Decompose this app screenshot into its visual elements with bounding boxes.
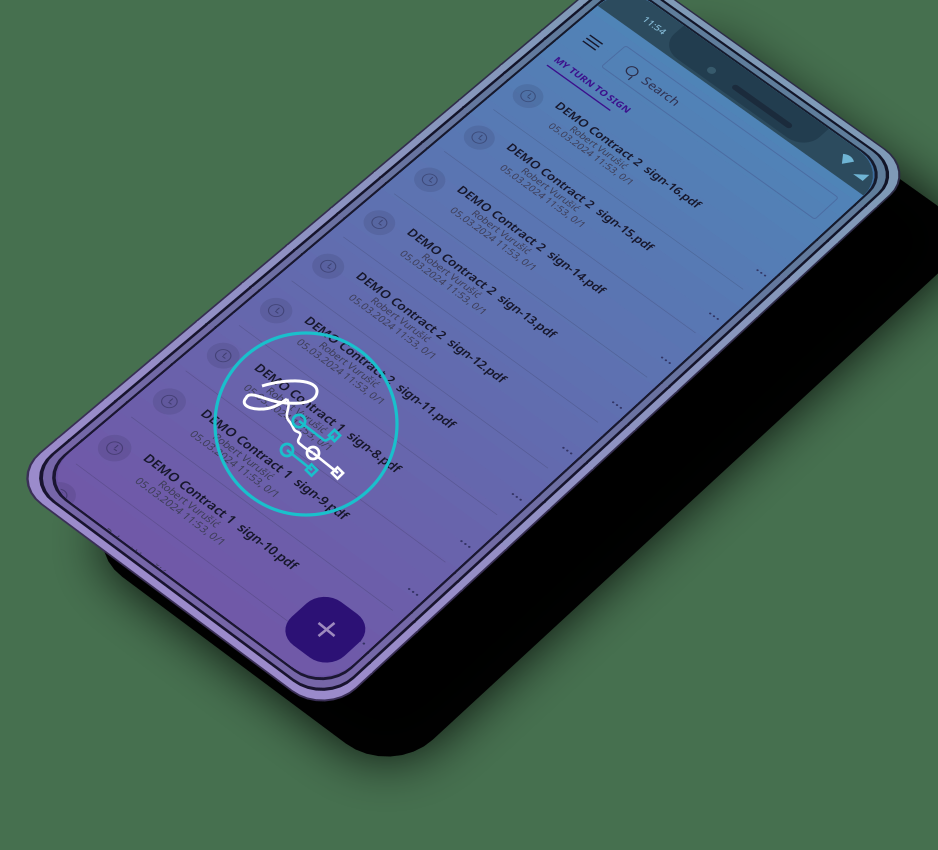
staticText: Robert Vurušić — [510, 181, 591, 197]
staticText: 05.03.2024 11:53, 0/1 — [531, 146, 651, 162]
staticText: 05.03.2024 11:53, 0/1 — [229, 409, 349, 425]
staticText: DEMO Contract 2 sign-14.pdf — [428, 230, 635, 249]
staticText: Search — [636, 80, 687, 102]
button[interactable]: More options — [0, 0, 938, 850]
button[interactable]: More options — [0, 0, 938, 850]
staticText: MY TURN TO SIGN — [538, 77, 647, 93]
button[interactable]: More options — [0, 0, 938, 850]
staticText: DEMO Contract 1 sign-9.pdf — [175, 454, 374, 474]
staticText: 05.03.2024 11:53, 0/1 — [65, 551, 185, 567]
staticText: DEMO Contract 1 sign-10.pdf — [117, 502, 324, 521]
staticText: Robert Vurušić — [411, 267, 492, 283]
button[interactable]: More options — [0, 0, 938, 850]
staticText: Robert Vurušić — [461, 224, 542, 240]
button[interactable]: More options — [0, 0, 938, 850]
staticText: 05.03.2024 11:53, 0/1 — [175, 456, 295, 472]
staticText: Robert Vurušić — [257, 402, 338, 418]
button[interactable]: Close — [0, 0, 938, 850]
button[interactable]: More options — [0, 0, 938, 850]
staticText: 05.03.2024 11:53, 0/1 — [281, 364, 401, 380]
staticText: DEMO Contract 2 sign-16.pdf — [525, 145, 732, 164]
staticText: DEMO Contract 2 sign-15.pdf — [477, 187, 684, 206]
staticText: DEMO Contract 2 sign-13.pdf — [378, 273, 585, 293]
staticText: 11:54 — [639, 17, 670, 33]
button[interactable]: More options — [0, 0, 938, 850]
staticText: Robert Vurušić — [361, 312, 442, 327]
staticText: 05.03.2024 11:53, 0/1 — [121, 503, 241, 519]
staticText: 05.03.2024 11:53, 0/1 — [434, 231, 554, 247]
staticText: DEMO Contract 2 sign-11.pdf — [277, 362, 484, 382]
button[interactable]: More options — [0, 0, 938, 850]
staticText: Robert Vurušić — [149, 496, 230, 512]
staticText: Robert Vurušić — [309, 356, 390, 372]
button[interactable]: MY TURN TO SIGN — [0, 0, 938, 850]
staticText: Robert Vurušić — [559, 139, 640, 155]
staticText: Robert Vurušić — [203, 448, 284, 464]
staticText: 05.03.2024 11:53, 0/1 — [483, 188, 603, 204]
staticText: 05.03.2024 11:53, 0/1 — [333, 319, 453, 335]
staticText: DEMO Contract 1 sign-8.pdf — [228, 408, 427, 427]
button[interactable]: More options — [0, 0, 938, 850]
staticText: DEMO Contract 2 sign-12.pdf — [328, 317, 535, 337]
button[interactable]: Menu — [0, 0, 938, 850]
button[interactable]: Search — [0, 0, 938, 850]
button[interactable]: More options — [0, 0, 938, 850]
staticText: Robert Vurušić — [94, 544, 175, 560]
staticText: 05.03.2024 11:53, 0/1 — [384, 274, 504, 290]
